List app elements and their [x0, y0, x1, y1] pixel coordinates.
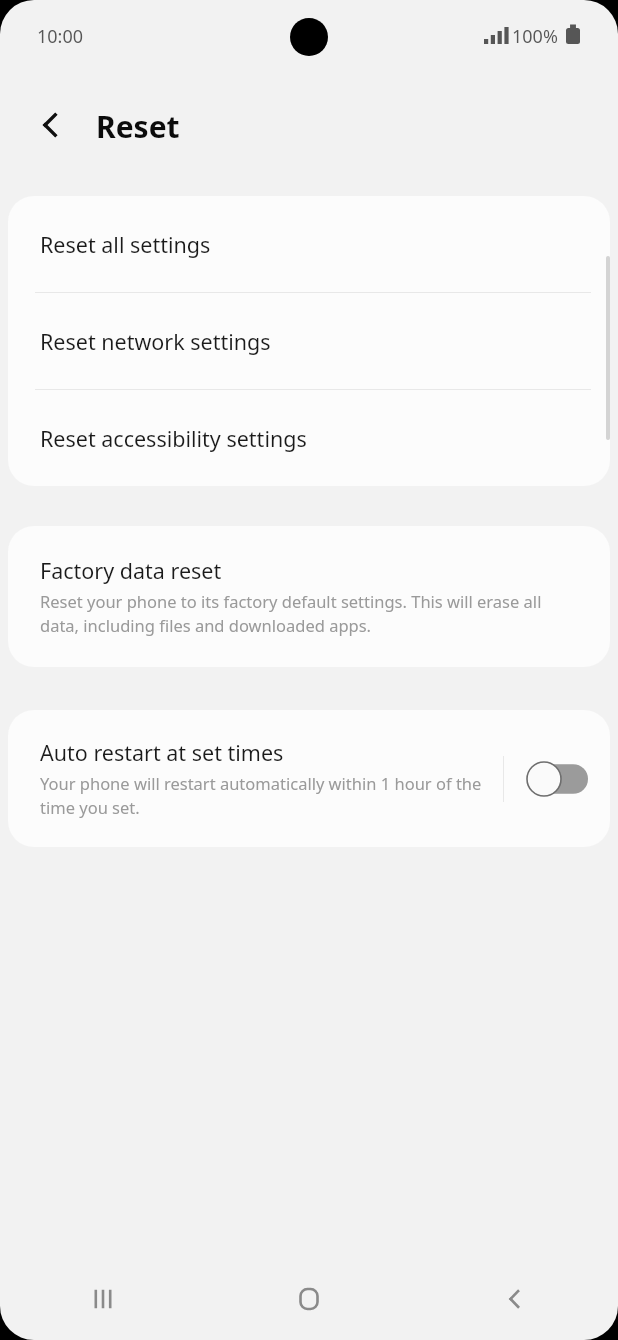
staticText: 100%: [512, 24, 558, 49]
button[interactable]: Factory data reset: [8, 526, 610, 667]
staticText: Factory data reset: [40, 556, 222, 585]
button[interactable]: Back: [412, 1258, 618, 1340]
button[interactable]: Navigate up: [20, 94, 82, 156]
staticText: 10:00: [37, 24, 84, 49]
staticText: Reset network settings: [40, 327, 271, 356]
button[interactable]: Reset accessibility settings: [8, 390, 610, 486]
button[interactable]: Reset all settings: [8, 196, 610, 292]
staticText: Reset: [96, 106, 180, 147]
button[interactable]: Recent apps: [0, 1258, 206, 1340]
button[interactable]: Auto restart at set times toggle: [504, 737, 610, 821]
button[interactable]: Home: [206, 1258, 412, 1340]
staticText: Auto restart at set times: [40, 738, 284, 767]
staticText: Reset all settings: [40, 230, 211, 259]
staticText: Your phone will restart automatically wi…: [40, 772, 495, 819]
staticText: Reset your phone to its factory default …: [40, 590, 582, 637]
staticText: Reset accessibility settings: [40, 424, 307, 453]
button[interactable]: Reset network settings: [8, 293, 610, 389]
button[interactable]: Auto restart at set times: [8, 710, 503, 847]
